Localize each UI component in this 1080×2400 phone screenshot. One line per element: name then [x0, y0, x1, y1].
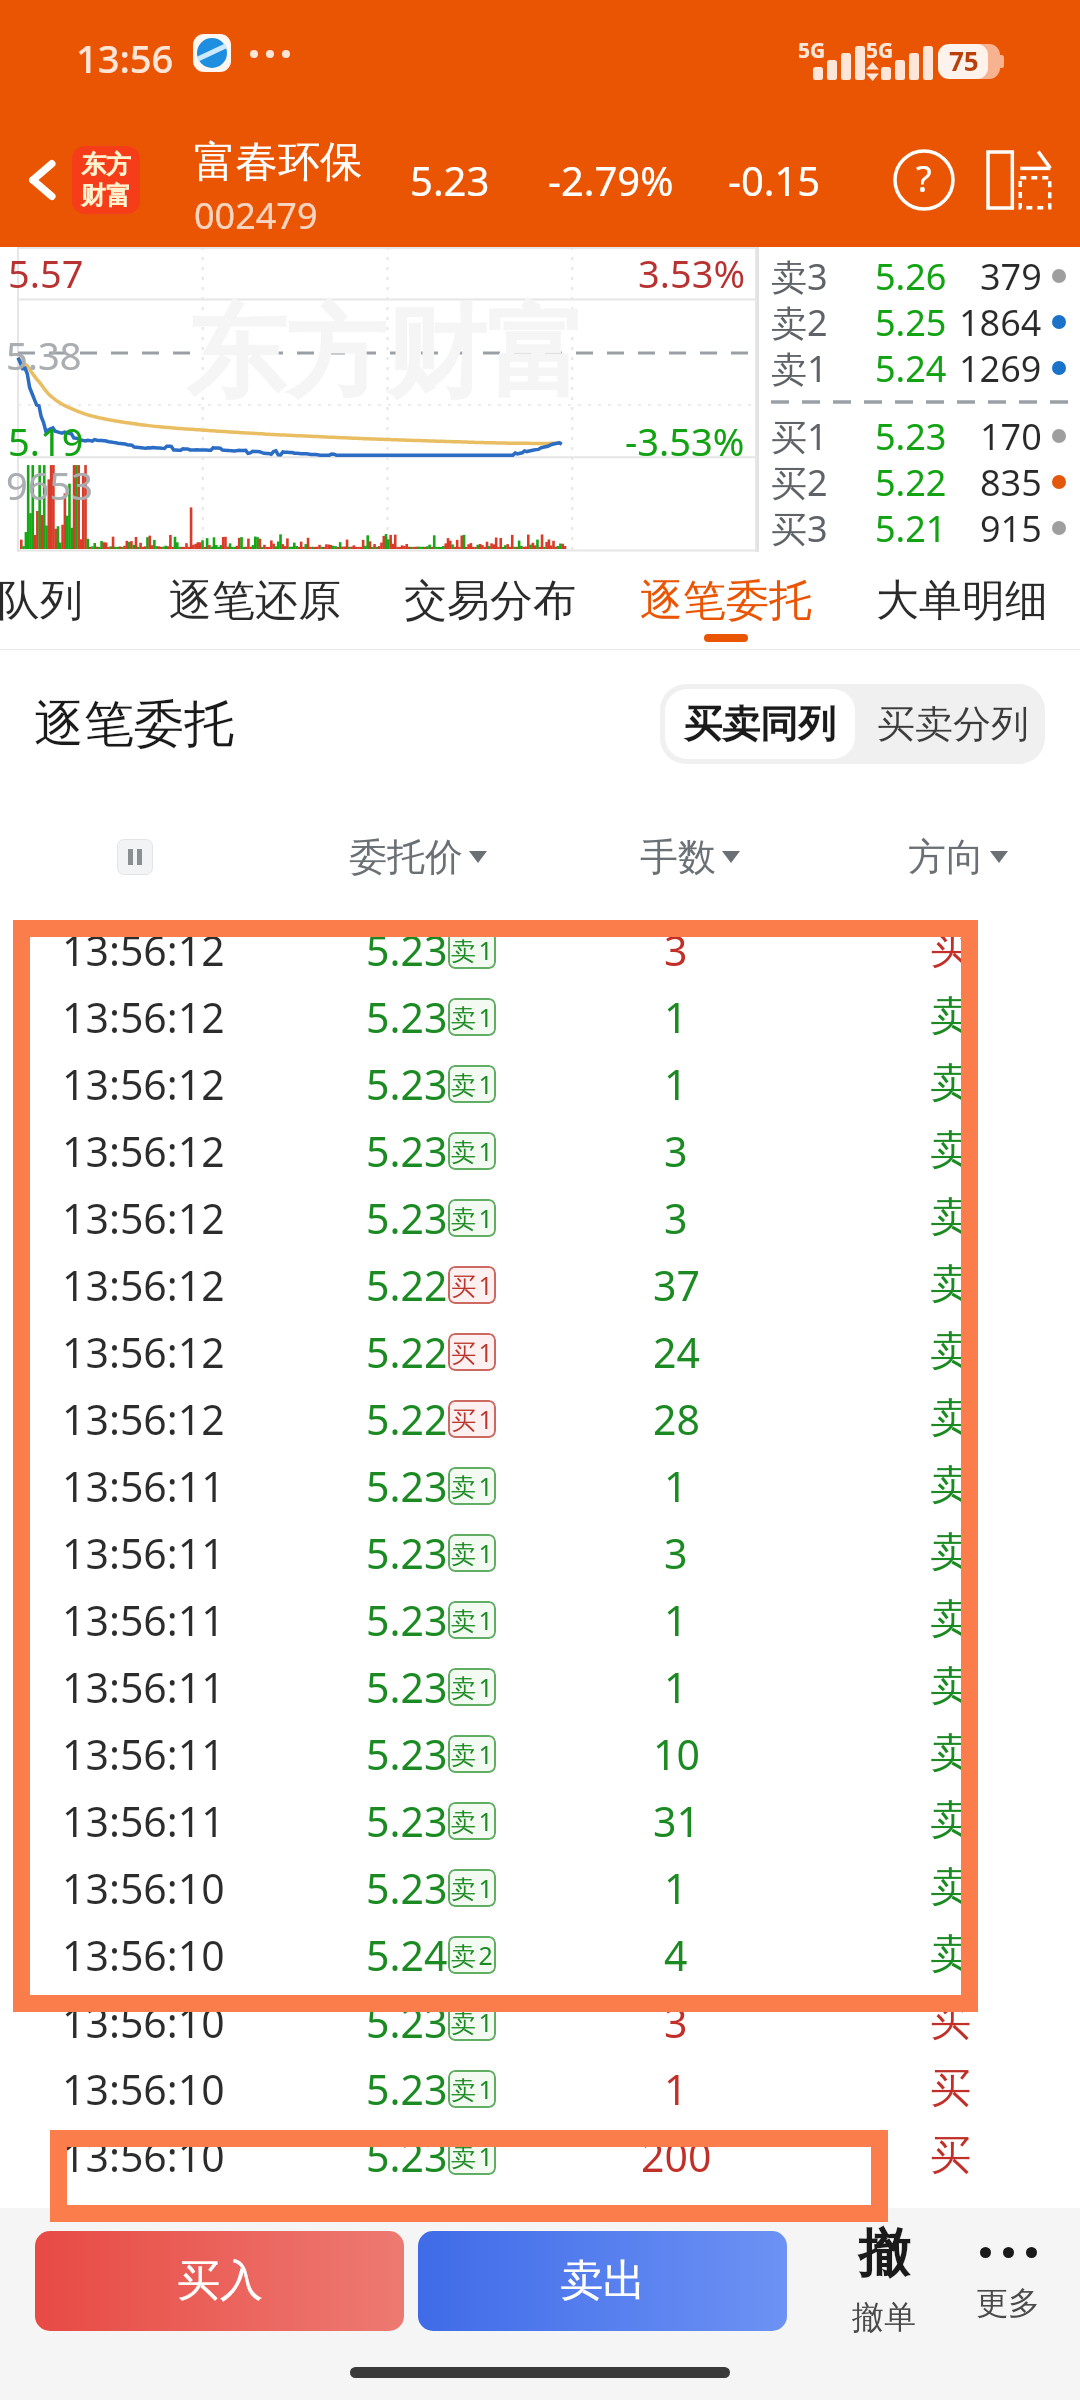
staticText: 13:56:12: [62, 1190, 225, 1246]
button[interactable]: 买卖同列: [665, 689, 855, 759]
staticText: 买 1: [451, 1335, 493, 1369]
button[interactable]: 13:56:10: [0, 1988, 1080, 2055]
button[interactable]: 13:56:10: [0, 2122, 1080, 2189]
button[interactable]: 买卖分列: [860, 689, 1045, 759]
button[interactable]: 13:56:10: [0, 1921, 1080, 1988]
staticText: 5.23: [366, 2128, 448, 2184]
staticText: 卖出: [560, 2254, 646, 2308]
button[interactable]: 13:56:12: [0, 1318, 1080, 1385]
staticText: 富春环保: [194, 136, 362, 189]
button[interactable]: 13:56:11: [0, 1452, 1080, 1519]
staticText: 5.23: [875, 412, 947, 461]
staticText: 卖: [930, 1192, 971, 1244]
button[interactable]: 13:56:10: [0, 1854, 1080, 1921]
button[interactable]: 东方财富: [72, 146, 140, 214]
staticText: 915: [980, 504, 1042, 553]
button[interactable]: 13:56:12: [0, 916, 1080, 983]
staticText: 卖 2: [451, 1938, 493, 1972]
staticText: 买1: [771, 412, 828, 461]
button[interactable]: 逐笔还原: [145, 552, 365, 650]
button[interactable]: 13:56:11: [0, 1653, 1080, 1720]
staticText: 13:56:10: [62, 2128, 225, 2184]
button[interactable]: 13:56:12: [0, 983, 1080, 1050]
button[interactable]: 交易分布: [380, 552, 600, 650]
staticText: 卖: [930, 1728, 971, 1780]
button[interactable]: 卖2: [757, 294, 1080, 350]
staticText: 5.24: [875, 344, 947, 393]
staticText: 5.23: [366, 1525, 448, 1581]
staticText: 28: [653, 1391, 700, 1447]
staticText: 13:56:11: [62, 1525, 225, 1581]
staticText: 卖 1: [451, 1603, 493, 1637]
staticText: 5.23: [366, 922, 448, 978]
staticText: 5.23: [410, 153, 490, 207]
button[interactable]: 买1: [757, 408, 1080, 464]
button[interactable]: 13:56:12: [0, 1184, 1080, 1251]
staticText: 13:56:11: [62, 1592, 225, 1648]
staticText: 3: [664, 1190, 688, 1246]
staticText: 1: [664, 1659, 688, 1715]
staticText: 买: [930, 924, 971, 976]
staticText: 卖 1: [451, 933, 493, 967]
button[interactable]: 13:56:12: [0, 1117, 1080, 1184]
button[interactable]: 13:56:11: [0, 1519, 1080, 1586]
staticText: 队列: [0, 574, 83, 628]
staticText: 13:56:11: [62, 1793, 225, 1849]
button[interactable]: 13:56:11: [0, 1787, 1080, 1854]
button[interactable]: 13:56:11: [0, 1586, 1080, 1653]
staticText: 方向: [908, 833, 984, 881]
staticText: 卖: [930, 1795, 971, 1847]
button[interactable]: 委托价: [328, 798, 508, 916]
button[interactable]: 队列: [0, 552, 150, 650]
staticText: 卖1: [771, 344, 828, 393]
button[interactable]: 买3: [757, 500, 1080, 556]
button[interactable]: 13:56:12: [0, 1385, 1080, 1452]
button[interactable]: 卖出: [418, 2231, 787, 2331]
button[interactable]: Pause: [117, 839, 153, 875]
staticText: 5.23: [366, 1190, 448, 1246]
staticText: 1: [664, 1592, 688, 1648]
button[interactable]: 13:56:11: [0, 1720, 1080, 1787]
button[interactable]: 卖3: [757, 248, 1080, 304]
staticText: -0.15: [728, 153, 821, 207]
staticText: 1: [664, 1860, 688, 1916]
staticText: 5.23: [366, 1123, 448, 1179]
button[interactable]: 手数: [600, 798, 780, 916]
button[interactable]: 逐笔委托: [616, 552, 836, 650]
button[interactable]: 卖1: [757, 340, 1080, 396]
staticText: 5.23: [366, 1659, 448, 1715]
button[interactable]: 13:56:12: [0, 1251, 1080, 1318]
button[interactable]: 13:56:12: [0, 1050, 1080, 1117]
staticText: 13:56:10: [62, 1927, 225, 1983]
staticText: 大单明细: [876, 574, 1048, 628]
staticText: 卖 1: [451, 1804, 493, 1838]
button[interactable]: 撤: [826, 2221, 942, 2337]
staticText: 5.38: [6, 329, 82, 381]
staticText: 5.23: [366, 1860, 448, 1916]
staticText: 13:56:11: [62, 1726, 225, 1782]
staticText: 委托价: [349, 833, 463, 881]
button[interactable]: 大单明细: [852, 552, 1072, 650]
button[interactable]: 买入: [35, 2231, 404, 2331]
staticText: 东方财富: [186, 291, 586, 417]
staticText: 卖 1: [451, 1670, 493, 1704]
staticText: 13:56:12: [62, 1324, 225, 1380]
button[interactable]: 更多: [950, 2221, 1066, 2323]
button[interactable]: 13:56:10: [0, 2055, 1080, 2122]
button[interactable]: Back: [4, 141, 82, 219]
staticText: 13:56:12: [62, 1257, 225, 1313]
staticText: -3.53%: [625, 415, 745, 467]
staticText: 13:56:10: [62, 1860, 225, 1916]
staticText: 13:56:10: [62, 1994, 225, 2050]
button[interactable]: Help: [880, 136, 968, 224]
staticText: 1864: [959, 298, 1042, 347]
staticText: 卖 1: [451, 1134, 493, 1168]
staticText: 手数: [640, 833, 716, 881]
button[interactable]: Layout: [975, 136, 1063, 224]
staticText: 3: [664, 1994, 688, 2050]
staticText: 卖: [930, 991, 971, 1043]
staticText: 卖: [930, 1058, 971, 1110]
button[interactable]: 方向: [868, 798, 1048, 916]
button[interactable]: 买2: [757, 454, 1080, 510]
staticText: 买: [930, 1996, 971, 2048]
